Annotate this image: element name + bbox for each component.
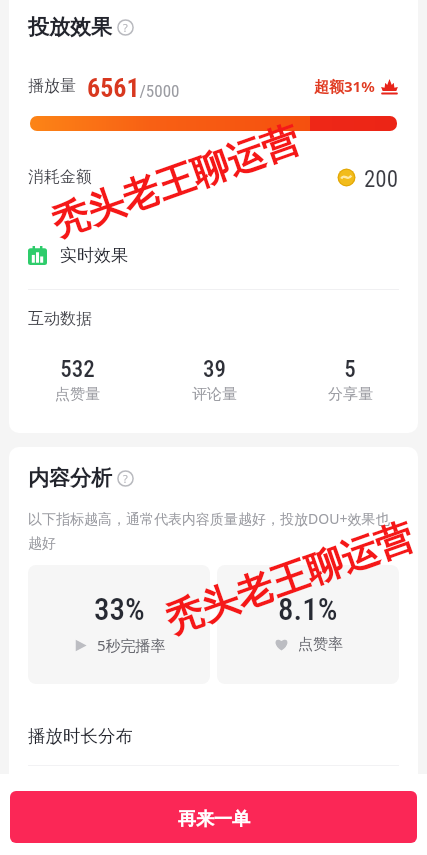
button[interactable]: 39 [146,356,282,404]
staticText: ? [123,20,128,35]
staticText: 超额31% [314,76,375,96]
staticText: 投放效果 [28,14,112,40]
staticText: 点赞率 [298,635,343,654]
staticText: 532 [60,356,95,383]
staticText: 5秒完播率 [97,635,166,655]
staticText: 分享量 [328,385,373,404]
staticText: 以下指标越高，通常代表内容质量越好，投放DOU+效果也越好 [28,509,402,552]
staticText: 播放时长分布 [28,725,133,747]
staticText: 播放量 [28,76,76,96]
staticText: 实时效果 [60,245,128,266]
staticText: 33% [94,591,145,627]
staticText: 8.1% [278,591,338,627]
button[interactable]: 再来一单 [10,791,417,843]
staticText: 再来一单 [178,808,250,831]
staticText: 点赞量 [55,385,100,404]
staticText: ? [123,471,128,486]
button[interactable]: 33% [28,565,210,684]
other: Over target [380,77,399,96]
staticText: 消耗金额 [28,167,92,187]
staticText: 5 [344,356,356,383]
staticText: 秃头老王聊运营 [160,513,419,644]
button[interactable]: 实时效果 [28,244,399,266]
staticText: 评论量 [192,385,237,404]
button[interactable]: 8.1% [217,565,399,684]
staticText: 内容分析 [28,465,112,491]
staticText: 互动数据 [28,309,92,329]
button[interactable]: Help [117,19,134,36]
staticText: 秃头老王聊运营 [46,116,305,247]
button[interactable]: 532 [9,356,146,404]
button[interactable]: Help [117,470,134,487]
staticText: 6561/5000 [87,73,180,99]
staticText: 39 [203,356,226,383]
staticText: 200 [364,166,399,188]
button[interactable]: 5 [282,356,418,404]
